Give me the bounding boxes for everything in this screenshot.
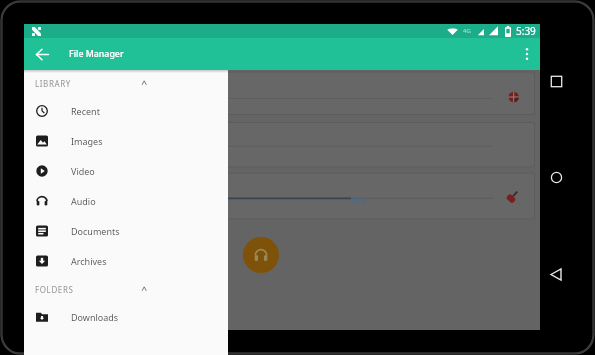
button[interactable]: Documents	[24, 216, 228, 246]
button[interactable]: Play audio	[243, 237, 279, 273]
button[interactable]: Audio	[24, 186, 228, 216]
staticText: Documents	[71, 225, 120, 237]
staticText: 4G	[463, 27, 471, 35]
button[interactable]: Video	[24, 156, 228, 186]
staticText: Downloads	[71, 311, 119, 323]
staticText: 67%	[351, 195, 366, 205]
staticText: LIBRARY	[35, 78, 71, 89]
staticText: Audio	[71, 195, 96, 207]
staticText: Recent	[71, 105, 100, 117]
button[interactable]: Recent	[24, 96, 228, 126]
staticText: Archives	[71, 255, 107, 267]
button[interactable]: More options	[511, 38, 543, 70]
button[interactable]: Downloads	[24, 302, 228, 332]
staticText: 5:39	[516, 24, 536, 38]
button[interactable]: Back	[24, 38, 61, 70]
staticText: Images	[71, 135, 103, 147]
button[interactable]: Home	[541, 162, 572, 193]
button[interactable]: LIBRARY	[24, 70, 228, 96]
staticText: File Manager	[69, 48, 124, 60]
staticText: FOLDERS	[35, 284, 74, 295]
button[interactable]: Recent apps	[541, 66, 572, 97]
button[interactable]: Images	[24, 126, 228, 156]
button[interactable]: Archives	[24, 246, 228, 276]
staticText: Video	[71, 165, 95, 177]
button[interactable]: Back	[541, 259, 572, 290]
button[interactable]: FOLDERS	[24, 276, 228, 302]
